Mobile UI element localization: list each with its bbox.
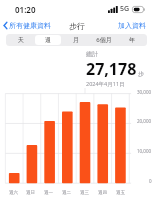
staticText: 20,000 (137, 118, 152, 124)
staticText: 週六 (9, 190, 18, 196)
button[interactable]: 月 (63, 35, 89, 45)
button[interactable]: 加入資料 (111, 19, 153, 32)
staticText: 週二 (62, 190, 71, 196)
staticText: 5G (120, 4, 130, 14)
other: Back to All Health Data (3, 21, 8, 30)
button[interactable]: 週 (35, 35, 61, 45)
button[interactable]: 天 (8, 35, 33, 45)
staticText: 所有健康資料 (9, 21, 51, 30)
staticText: 週五 (116, 190, 125, 196)
staticText: 週 (45, 36, 51, 44)
button[interactable]: 年 (119, 35, 145, 45)
staticText: 01:20 (15, 4, 36, 15)
staticText: 2024年4月11日 (86, 80, 125, 88)
button[interactable]: 6個月 (91, 35, 117, 45)
staticText: 月 (73, 36, 79, 44)
button[interactable]: Back to All Health Data (0, 19, 55, 32)
staticText: 週一 (44, 190, 53, 196)
staticText: 0 (149, 178, 152, 184)
staticText: 週日 (26, 190, 35, 196)
staticText: 步行 (69, 21, 85, 31)
staticText: 6個月 (96, 36, 112, 44)
staticText: 步 (138, 70, 144, 78)
staticText: 30,000 (137, 89, 152, 95)
staticText: 總計 (86, 50, 98, 58)
staticText: 週三 (80, 190, 89, 196)
staticText: 年 (129, 36, 135, 44)
staticText: 10,000 (137, 148, 152, 154)
staticText: 天 (18, 36, 24, 44)
staticText: 加入資料 (118, 21, 146, 30)
staticText: 週四 (98, 190, 107, 196)
staticText: 27,178 (86, 58, 137, 80)
